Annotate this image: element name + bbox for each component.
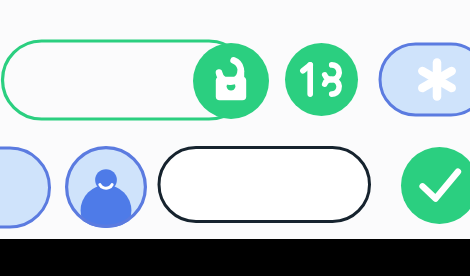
button[interactable]: 13 <box>285 43 358 116</box>
button[interactable]: Card <box>0 146 52 230</box>
button[interactable]: Unlock slider <box>0 38 252 122</box>
button[interactable]: Confirm <box>401 147 470 224</box>
button[interactable]: Asterisk <box>378 42 470 117</box>
button[interactable]: Profile <box>65 146 147 228</box>
button[interactable]: Unlock <box>193 43 269 119</box>
button[interactable]: Field <box>157 145 372 225</box>
